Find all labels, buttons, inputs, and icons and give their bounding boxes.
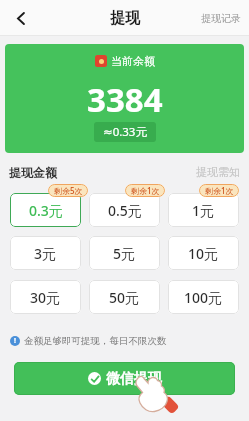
button[interactable]: 0.5元 xyxy=(89,193,160,227)
staticText: 1元 xyxy=(192,201,215,220)
button[interactable]: 50元 xyxy=(89,280,160,314)
staticText: 0.3元 xyxy=(29,201,63,220)
staticText: ≈0.33元 xyxy=(103,124,147,140)
button[interactable]: 100元 xyxy=(168,280,239,314)
staticText: 提现记录 xyxy=(201,12,241,25)
button[interactable] xyxy=(9,6,33,30)
staticText: 金额足够即可提现，每日不限次数 xyxy=(24,335,167,347)
staticText: 30元 xyxy=(30,288,61,307)
staticText: 10元 xyxy=(188,244,219,263)
button[interactable]: 5元 xyxy=(89,236,160,270)
staticText: 提现 xyxy=(110,9,140,28)
staticText: 3384 xyxy=(87,77,163,122)
button[interactable]: 10元 xyxy=(168,236,239,270)
staticText: ! xyxy=(14,336,16,346)
staticText: 0.5元 xyxy=(108,201,142,220)
staticText: 提现金额 xyxy=(9,165,57,180)
staticText: 3元 xyxy=(34,244,57,263)
staticText: 剩余5次 xyxy=(54,185,83,196)
button[interactable]: 提现记录 xyxy=(201,12,241,25)
staticText: 5元 xyxy=(113,244,136,263)
staticText: 剩余1次 xyxy=(205,185,234,196)
staticText: 当前余额 xyxy=(111,54,155,68)
button[interactable]: 3元 xyxy=(10,236,81,270)
button[interactable]: 提现需知 xyxy=(196,165,240,179)
button[interactable]: 1元 xyxy=(168,193,239,227)
staticText: 100元 xyxy=(184,288,223,307)
staticText: 微信提现 xyxy=(106,370,162,388)
button[interactable]: 微信提现 xyxy=(14,362,235,395)
staticText: 50元 xyxy=(109,288,140,307)
button[interactable]: 0.3元 xyxy=(10,193,81,227)
staticText: 剩余1次 xyxy=(131,185,160,196)
button[interactable]: 30元 xyxy=(10,280,81,314)
